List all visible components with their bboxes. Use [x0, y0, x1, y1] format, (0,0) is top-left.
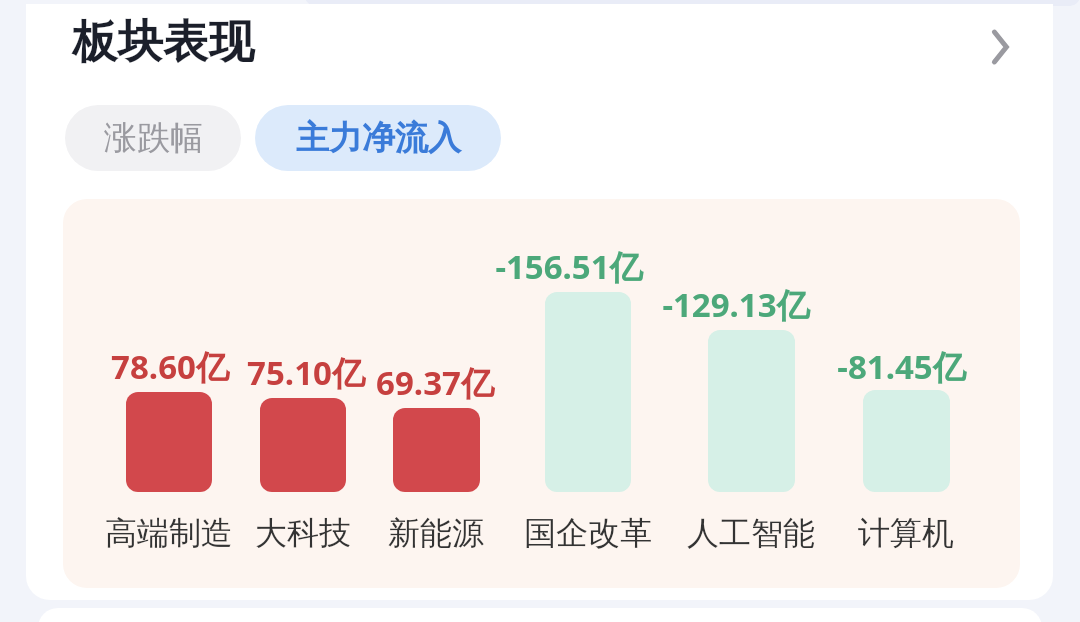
staticText: 78.60亿	[111, 344, 229, 389]
button[interactable]: 主力净流入	[255, 105, 501, 171]
button[interactable]	[63, 199, 1020, 588]
staticText: 新能源	[388, 513, 484, 553]
button[interactable]	[260, 398, 346, 492]
staticText: -156.51亿	[495, 244, 643, 289]
staticText: 主力净流入	[296, 117, 461, 159]
staticText: 计算机	[858, 513, 954, 553]
staticText: -129.13亿	[662, 282, 810, 327]
button[interactable]	[393, 408, 480, 492]
staticText: 人工智能	[687, 513, 815, 553]
staticText: 板块表现	[72, 14, 254, 71]
staticText: 高端制造	[105, 513, 233, 553]
staticText: 涨跌幅	[104, 117, 203, 159]
button[interactable]: 查看更多 板块表现	[962, 10, 1038, 84]
staticText: -81.45亿	[837, 344, 966, 389]
staticText: 69.37亿	[376, 360, 494, 405]
button[interactable]: 板块表现	[70, 12, 256, 73]
button[interactable]	[545, 292, 631, 492]
button[interactable]: 涨跌幅	[65, 105, 241, 171]
staticText: 大科技	[255, 513, 351, 553]
button[interactable]	[708, 330, 795, 492]
button[interactable]	[126, 392, 212, 492]
staticText: 国企改革	[524, 513, 652, 553]
button[interactable]	[863, 390, 950, 492]
staticText: 75.10亿	[247, 350, 365, 395]
